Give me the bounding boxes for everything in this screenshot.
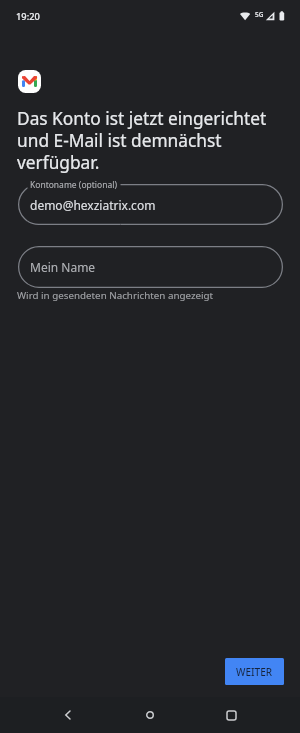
button[interactable]: Recent apps	[213, 697, 249, 733]
staticText: WEITER	[236, 665, 273, 679]
button[interactable]: WEITER	[225, 658, 284, 685]
staticText: Mein Name	[30, 259, 96, 275]
button[interactable]: demo@hexziatrix.com	[18, 184, 283, 225]
staticText: Das Konto ist jetzt eingerichtet und E-M…	[17, 107, 285, 174]
staticText: demo@hexziatrix.com	[30, 197, 156, 213]
staticText: 5G	[255, 10, 264, 19]
button[interactable]: Mein Name	[18, 246, 283, 288]
button[interactable]: Home	[132, 697, 168, 733]
staticText: 19:20	[16, 10, 40, 23]
button[interactable]: Back	[49, 697, 85, 733]
staticText: Wird in gesendeten Nachrichten angezeigt	[17, 289, 214, 302]
staticText: Kontoname (optional)	[30, 179, 117, 191]
